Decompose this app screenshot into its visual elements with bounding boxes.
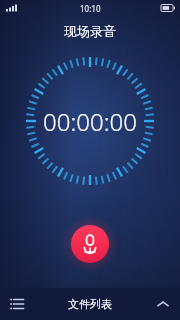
staticText: 文件列表 bbox=[68, 297, 112, 311]
button[interactable]: Start recording bbox=[71, 225, 109, 263]
button[interactable]: Expand bbox=[146, 288, 180, 320]
button[interactable]: 文件列表 bbox=[54, 291, 126, 317]
button[interactable]: Menu bbox=[0, 288, 34, 320]
staticText: 00:00:00 bbox=[43, 105, 137, 138]
staticText: 10:10 bbox=[80, 3, 101, 14]
staticText: 现场录音 bbox=[64, 23, 116, 39]
